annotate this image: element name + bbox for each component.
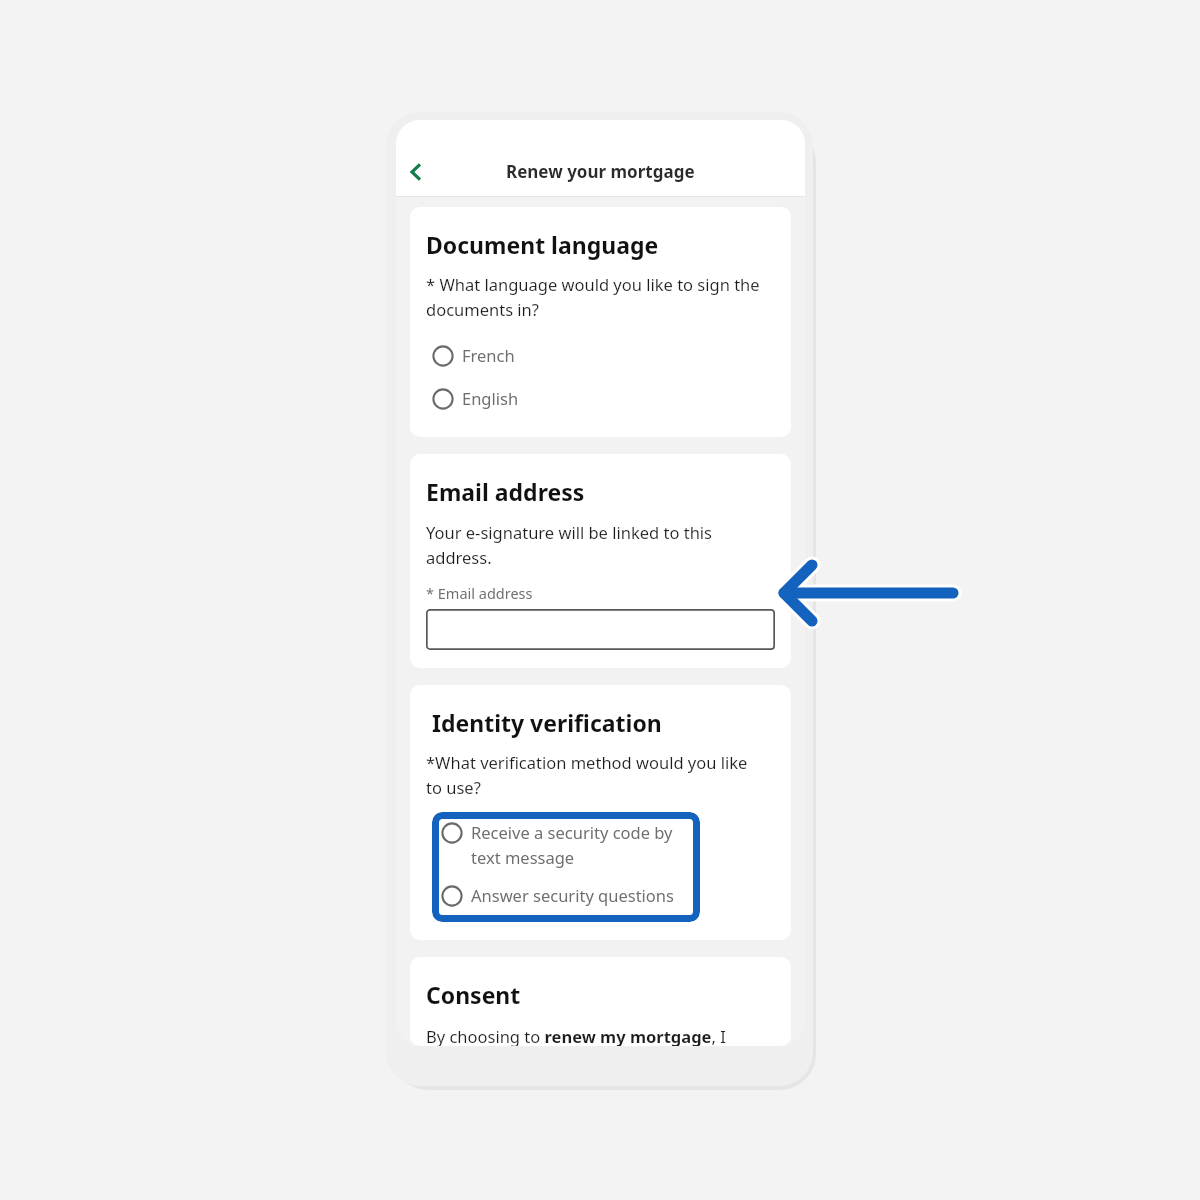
button[interactable]: French xyxy=(432,344,785,366)
staticText: English xyxy=(462,387,519,409)
staticText: Identity verification xyxy=(426,707,662,738)
staticText: Renew your mortgage xyxy=(506,160,695,183)
staticText: Answer security questions xyxy=(471,884,694,906)
staticText: *What verification method would you like… xyxy=(426,751,761,798)
staticText: * Email address xyxy=(426,583,533,603)
staticText: * What language would you like to sign t… xyxy=(426,273,761,320)
staticText: Email address xyxy=(426,476,585,507)
staticText: Your e-signature will be linked to this … xyxy=(426,521,761,568)
button[interactable]: Answer security questions xyxy=(441,884,694,906)
button[interactable]: English xyxy=(432,387,785,409)
button[interactable]: Back xyxy=(396,152,436,192)
staticText: By choosing to renew my mortgage, I ackn… xyxy=(426,1025,763,1046)
button[interactable]: Receive a security code by text message xyxy=(441,821,694,868)
staticText: Document language xyxy=(426,229,659,260)
staticText: Receive a security code by text message xyxy=(471,821,694,868)
staticText: French xyxy=(462,344,515,366)
staticText: Consent xyxy=(426,979,521,1010)
button[interactable]: Email address input xyxy=(426,609,775,650)
